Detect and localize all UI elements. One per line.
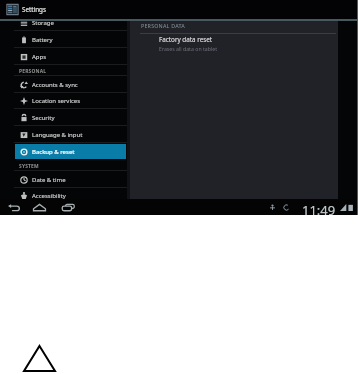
staticText: 11:49 [302,201,336,215]
button[interactable]: Accounts & sync [0,76,127,93]
button[interactable]: Location services [0,92,127,109]
staticText: Location services [32,97,81,105]
staticText: Apps [32,53,47,61]
staticText: Language & input [32,131,83,139]
staticText: Date & time [32,176,66,184]
button[interactable]: Backup & reset [15,144,126,159]
staticText: PERSONAL [19,68,47,75]
staticText: Settings [22,5,46,14]
button[interactable]: Apps [0,48,127,65]
staticText: Storage [32,21,54,27]
button[interactable]: Recent apps [62,204,75,211]
button[interactable]: Accessibility [0,187,127,199]
button[interactable]: Security [0,109,127,126]
button[interactable]: Battery [0,31,127,48]
button[interactable]: Storage [0,21,127,31]
staticText: Factory data reset [159,35,213,44]
staticText: PERSONAL DATA [141,22,185,29]
staticText: Battery [32,36,53,44]
staticText: Erases all data on tablet [159,45,218,52]
staticText: Accessibility [32,192,66,199]
button[interactable]: Settings [0,0,357,19]
button[interactable]: Home [33,204,46,211]
staticText: Backup & reset [32,148,75,156]
button[interactable]: Back [8,204,20,211]
button[interactable]: Date & time [0,171,127,188]
button[interactable]: Language & input [0,126,127,143]
staticText: Accounts & sync [32,81,78,89]
staticText: SYSTEM [19,163,39,170]
staticText: Security [32,114,55,122]
button[interactable]: Factory data reset [130,34,338,55]
